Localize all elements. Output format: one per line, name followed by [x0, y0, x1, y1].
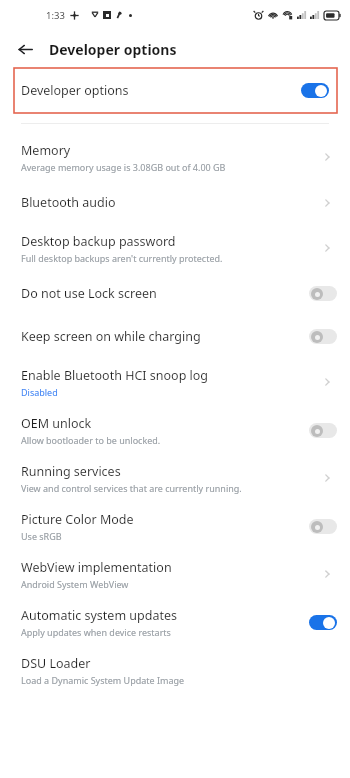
staticText: Load a Dynamic System Update Image	[21, 674, 185, 686]
button[interactable]: Picture Color Mode	[0, 502, 350, 550]
staticText: Full desktop backups aren't currently pr…	[21, 252, 223, 264]
button[interactable]: OEM unlock	[0, 406, 350, 454]
other: Toggle off	[309, 329, 337, 344]
staticText: WebView implementation	[21, 559, 172, 576]
button[interactable]: WebView implementation	[0, 550, 350, 598]
staticText: Memory	[21, 142, 71, 159]
button[interactable]: Bluetooth audio	[0, 181, 350, 224]
staticText: Apply updates when device restarts	[21, 626, 171, 638]
staticText: 1:33	[46, 9, 65, 22]
staticText: Running services	[21, 463, 121, 480]
button[interactable]: Automatic system updates	[0, 598, 350, 646]
staticText: Automatic system updates	[21, 607, 177, 624]
staticText: Average memory usage is 3.08GB out of 4.…	[21, 161, 226, 173]
staticText: Disabled	[21, 386, 58, 398]
staticText: Developer options	[49, 40, 177, 59]
staticText: Allow bootloader to be unlocked.	[21, 434, 161, 446]
button[interactable]: Developer options	[14, 68, 337, 113]
staticText: Do not use Lock screen	[21, 285, 157, 302]
button[interactable]: Enable Bluetooth HCI snoop log	[0, 358, 350, 406]
staticText: Enable Bluetooth HCI snoop log	[21, 367, 209, 384]
staticText: Use sRGB	[21, 530, 62, 542]
staticText: Desktop backup password	[21, 233, 176, 250]
other: Toggle on	[301, 83, 329, 98]
staticText: Developer options	[21, 82, 301, 99]
button[interactable]: Memory	[0, 133, 350, 181]
button[interactable]: Desktop backup password	[0, 224, 350, 272]
button[interactable]: Keep screen on while charging	[0, 315, 350, 358]
button[interactable]: Do not use Lock screen	[0, 272, 350, 315]
other: Toggle off	[309, 286, 337, 301]
staticText: Bluetooth audio	[21, 194, 116, 211]
button[interactable]: DSU Loader	[0, 646, 350, 694]
staticText: Keep screen on while charging	[21, 328, 201, 345]
other: Open	[317, 238, 337, 258]
button[interactable]: Running services	[0, 454, 350, 502]
staticText: View and control services that are curre…	[21, 482, 242, 494]
staticText: DSU Loader	[21, 655, 91, 672]
other: Toggle off	[309, 519, 337, 534]
other: Toggle on	[309, 615, 337, 630]
other: Toggle off	[309, 423, 337, 438]
staticText: Picture Color Mode	[21, 511, 134, 528]
staticText: OEM unlock	[21, 415, 92, 432]
other: Open	[317, 468, 337, 488]
staticText: Android System WebView	[21, 578, 129, 590]
other: Open	[317, 564, 337, 584]
other: Open	[317, 372, 337, 392]
button[interactable]: Back	[13, 37, 37, 61]
other: Open	[317, 147, 337, 167]
other: Open	[317, 193, 337, 213]
